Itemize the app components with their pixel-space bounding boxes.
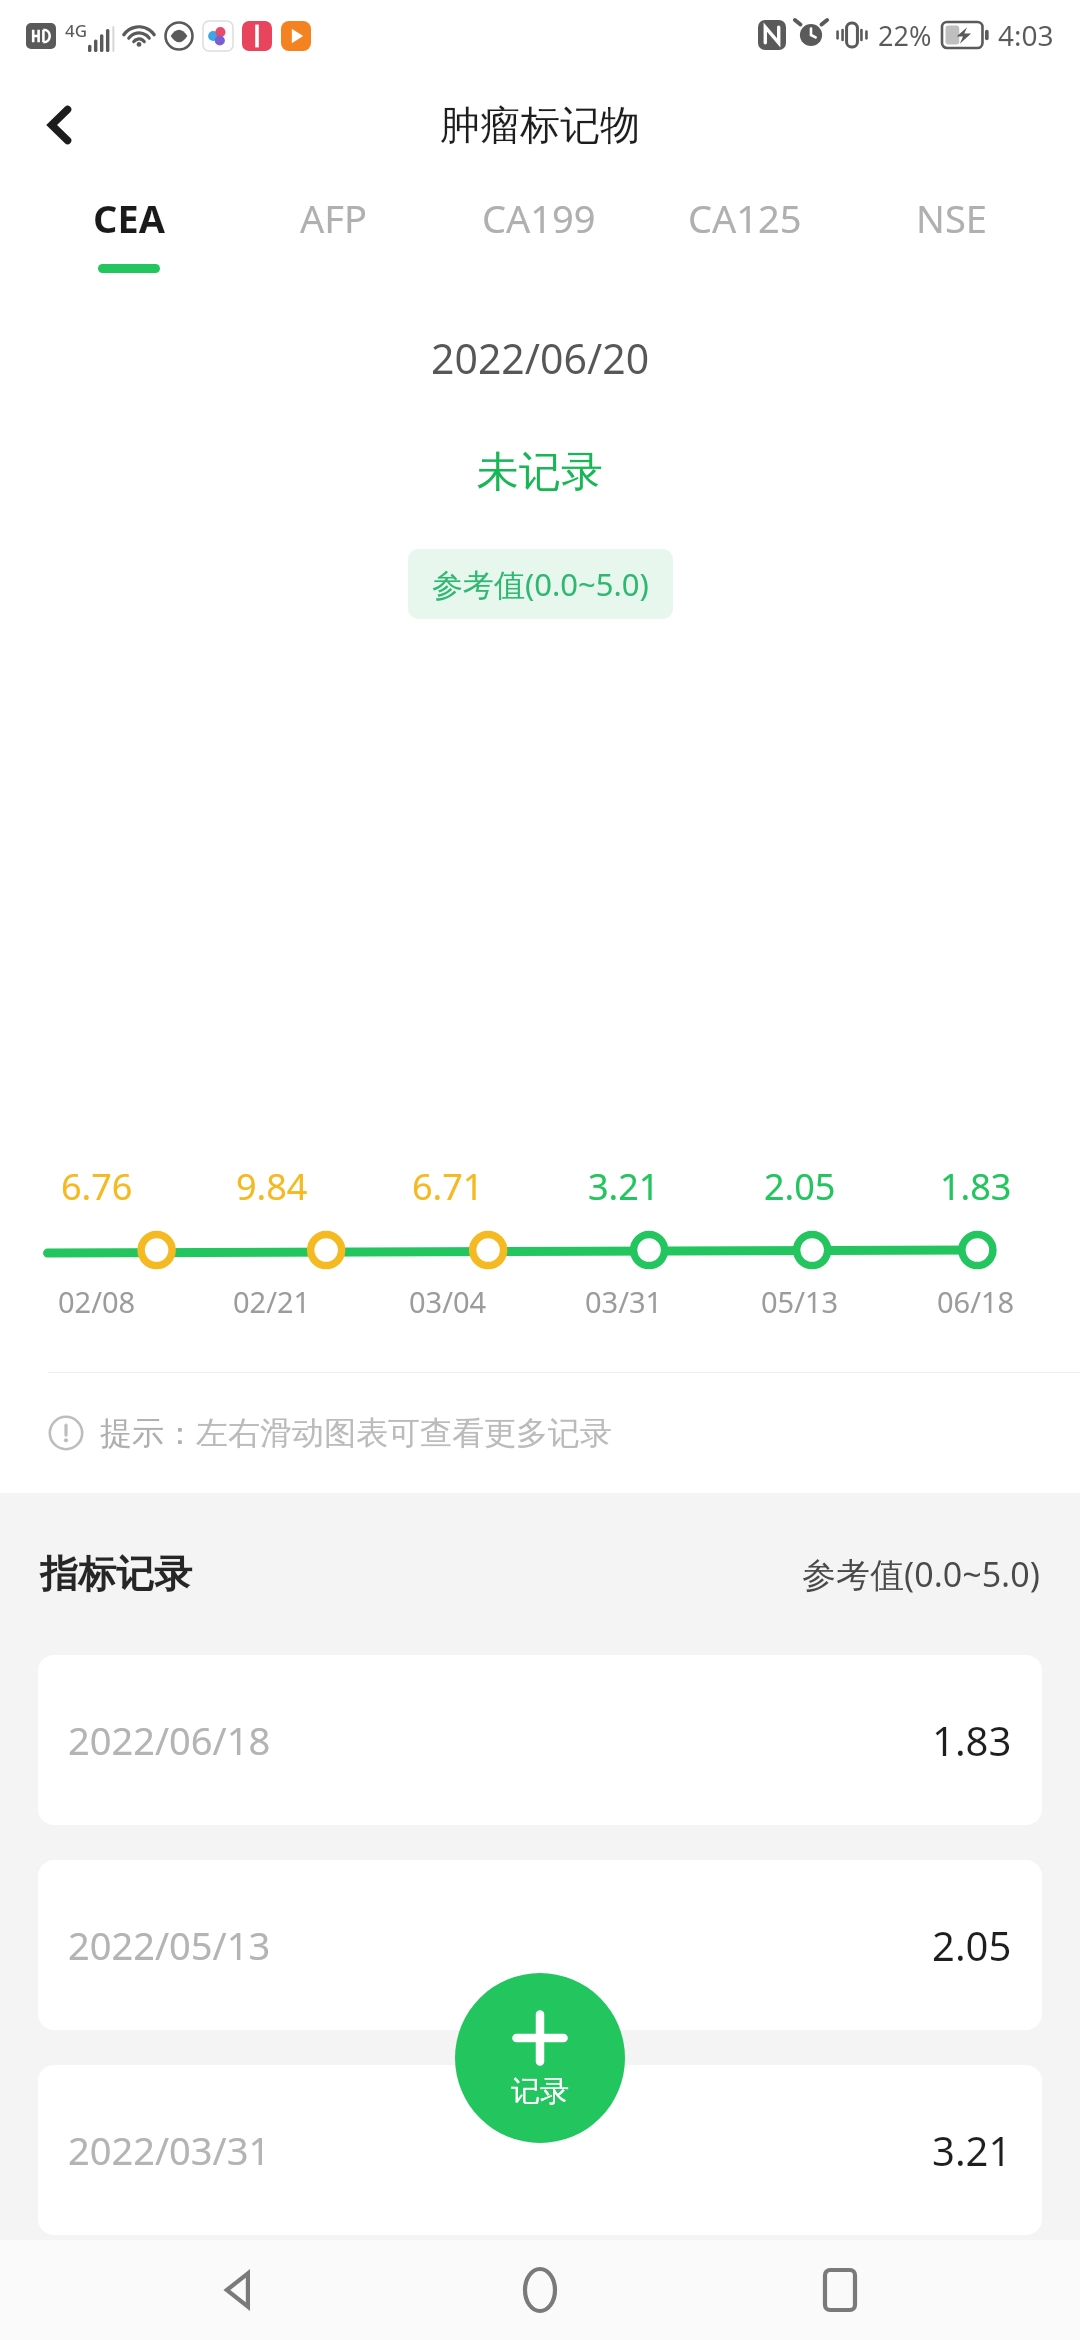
button[interactable]: 记录 Add record bbox=[455, 1973, 625, 2143]
button[interactable]: NSE bbox=[848, 180, 1054, 290]
staticText: 4G bbox=[65, 19, 88, 42]
button[interactable]: 2022/03/31 bbox=[38, 2065, 1042, 2235]
staticText: 提示： bbox=[100, 1413, 196, 1453]
staticText: 2.05 bbox=[932, 1918, 1012, 1972]
staticText: 左右滑动图表可查看更多记录 bbox=[196, 1413, 612, 1453]
staticText: 03/04 bbox=[409, 1282, 487, 1321]
staticText: 6.76 bbox=[61, 1162, 133, 1211]
staticText: CA125 bbox=[688, 192, 802, 244]
button[interactable]: CA125 bbox=[642, 180, 848, 290]
staticText: 2022/03/31 bbox=[68, 2124, 271, 2176]
staticText: 6.71 bbox=[412, 1162, 484, 1211]
staticText: 22% bbox=[878, 17, 932, 54]
staticText: 肿瘤标记物 bbox=[440, 100, 640, 150]
staticText: 2022/05/13 bbox=[68, 1919, 271, 1971]
staticText: 02/08 bbox=[58, 1282, 136, 1321]
staticText: 02/21 bbox=[233, 1282, 311, 1321]
staticText: 1.83 bbox=[932, 1713, 1012, 1767]
button[interactable]: 2022/05/13 bbox=[38, 1860, 1042, 2030]
button[interactable]: 参考值(0.0~5.0) bbox=[408, 549, 673, 619]
staticText: 03/31 bbox=[585, 1282, 663, 1321]
staticText: 指标记录 bbox=[40, 1550, 192, 1598]
staticText: 2.05 bbox=[764, 1162, 836, 1211]
staticText: 参考值(0.0~5.0) bbox=[432, 563, 649, 605]
button[interactable]: Recents bbox=[780, 2240, 900, 2340]
button[interactable]: CA199 bbox=[436, 180, 642, 290]
staticText: AFP bbox=[300, 192, 367, 244]
staticText: 3.21 bbox=[932, 2123, 1012, 2177]
staticText: 05/13 bbox=[761, 1282, 839, 1321]
staticText: 参考值(0.0~5.0) bbox=[802, 1551, 1040, 1597]
staticText: CA199 bbox=[482, 192, 596, 244]
button[interactable]: AFP bbox=[231, 180, 436, 290]
staticText: 3.21 bbox=[588, 1162, 660, 1211]
button[interactable]: CEA bbox=[26, 180, 231, 290]
button[interactable]: Back bbox=[180, 2240, 300, 2340]
button[interactable]: Back bbox=[20, 85, 100, 165]
button[interactable]: Home bbox=[480, 2240, 600, 2340]
staticText: 2022/06/18 bbox=[68, 1714, 271, 1766]
staticText: 记录 bbox=[511, 2073, 569, 2110]
staticText: CEA bbox=[93, 192, 165, 244]
staticText: 未记录 bbox=[477, 446, 603, 499]
staticText: NSE bbox=[916, 192, 987, 244]
staticText: 06/18 bbox=[937, 1282, 1015, 1321]
staticText: 2022/06/20 bbox=[431, 330, 650, 386]
staticText: 9.84 bbox=[236, 1162, 308, 1211]
button[interactable]: 2022/06/18 bbox=[38, 1655, 1042, 1825]
staticText: 4:03 bbox=[998, 16, 1054, 54]
staticText: 1.83 bbox=[940, 1162, 1012, 1211]
